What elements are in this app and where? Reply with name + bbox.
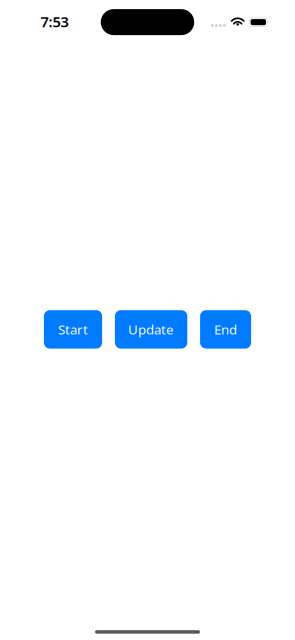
staticText: Start <box>58 320 88 338</box>
staticText: 7:53 <box>40 12 68 31</box>
staticText: Update <box>128 320 174 338</box>
button[interactable]: End <box>200 310 251 349</box>
button[interactable]: Update <box>115 310 187 349</box>
staticText: End <box>214 320 237 338</box>
button[interactable]: Start <box>44 310 102 349</box>
